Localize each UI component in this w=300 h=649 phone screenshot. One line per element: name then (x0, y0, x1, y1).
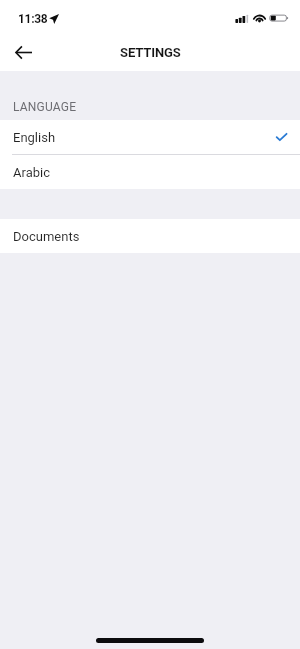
staticText: Documents (13, 229, 80, 244)
staticText: SETTINGS (120, 45, 181, 60)
staticText: Arabic (13, 165, 50, 180)
button[interactable]: Arabic (0, 155, 300, 189)
staticText: 11:38 (18, 12, 48, 26)
staticText: English (13, 130, 56, 145)
button[interactable]: Back (7, 37, 39, 69)
button[interactable]: Documents (0, 219, 300, 253)
staticText: LANGUAGE (13, 100, 77, 114)
button[interactable]: English (0, 120, 300, 155)
